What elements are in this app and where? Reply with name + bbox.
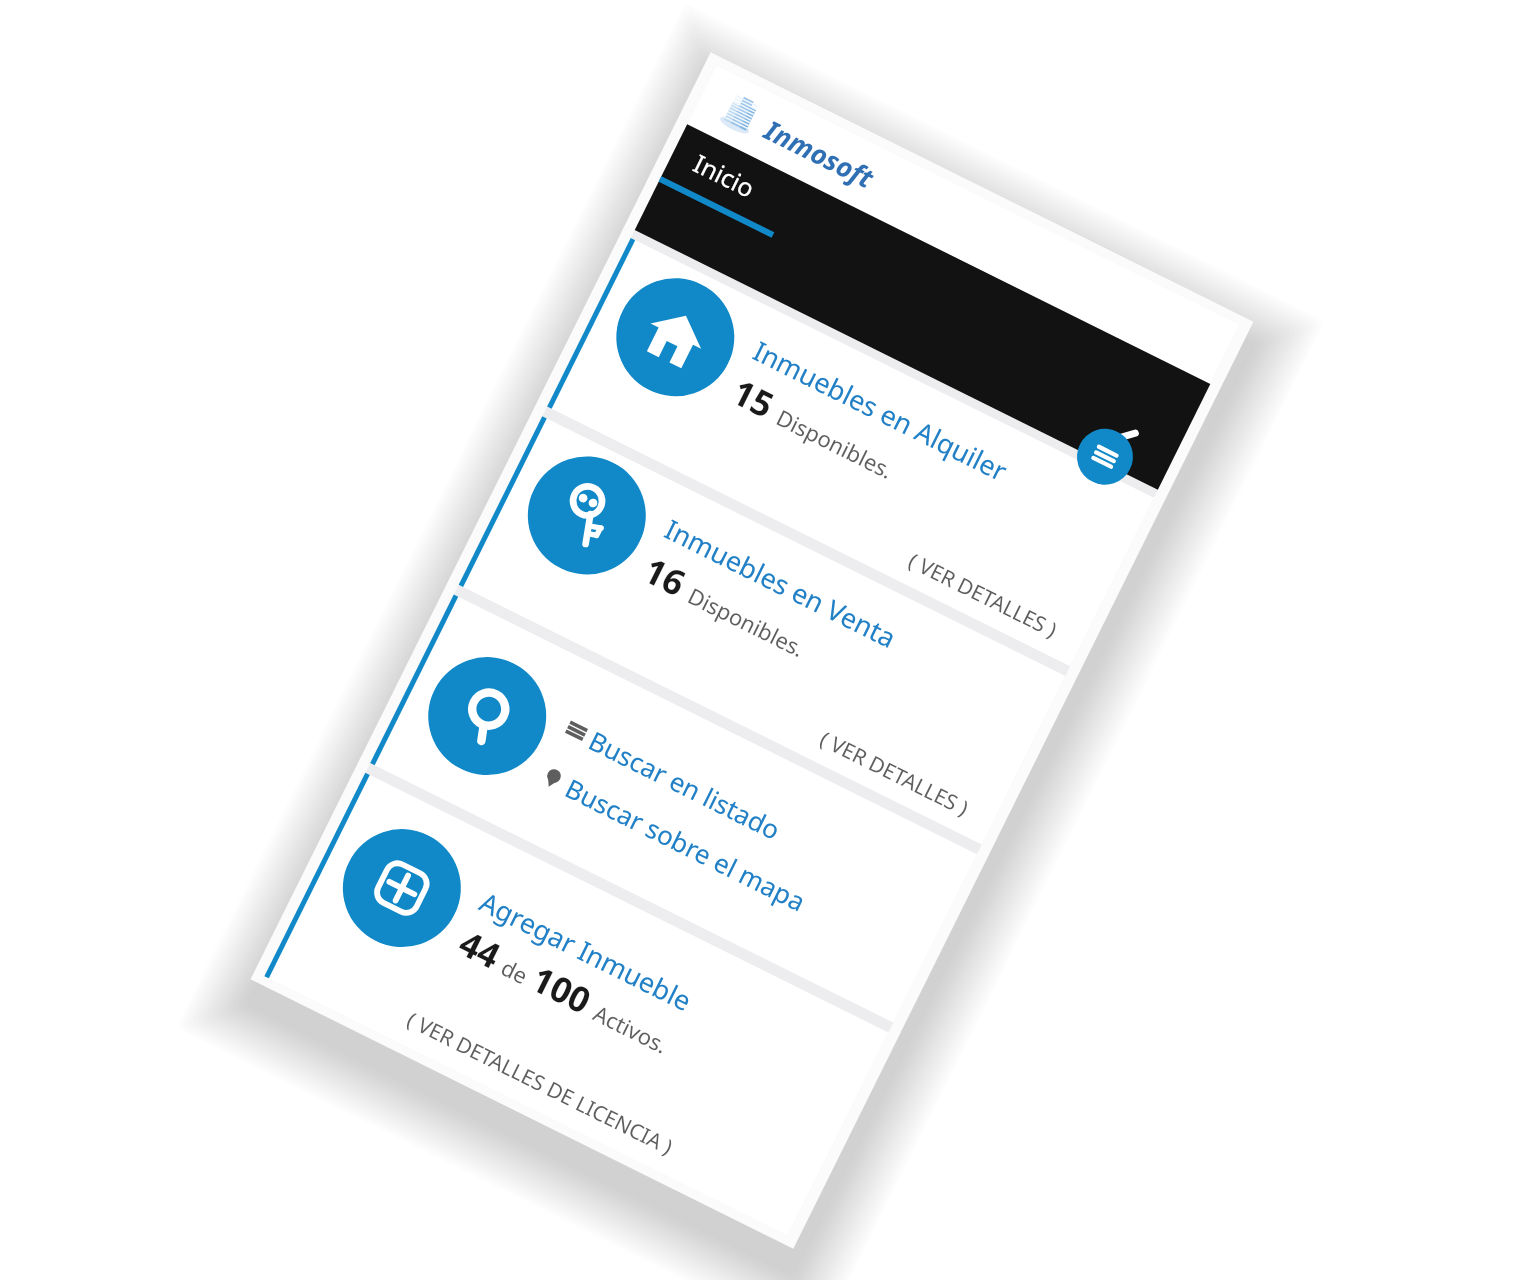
staticText: Inmosoft (759, 111, 880, 196)
staticText: Disponibles. (772, 402, 899, 485)
staticText: 15 (725, 368, 783, 429)
button[interactable]: Inmuebles en Alquiler (547, 238, 1154, 666)
button[interactable]: Inmuebles en Venta (459, 416, 1065, 844)
staticText: ( VER DETALLES ) (815, 724, 974, 823)
staticText: Activos. (589, 997, 674, 1060)
staticText: 100 (524, 955, 600, 1025)
button[interactable]: Agregar Inmueble (264, 773, 888, 1236)
staticText: Agregar Inmueble (474, 883, 698, 1019)
staticText: de (496, 952, 533, 990)
staticText: Disponibles. (683, 580, 810, 663)
button[interactable]: Menu (1067, 419, 1142, 494)
button[interactable]: Buscar en listado (370, 595, 977, 1023)
staticText: Inmuebles en Alquiler (747, 332, 1014, 489)
staticText: Inmuebles en Venta (659, 510, 903, 656)
staticText: 16 (636, 546, 694, 607)
button[interactable]: Buscar en listado (560, 711, 787, 847)
button[interactable]: Buscar sobre el mapa (537, 758, 812, 919)
staticText: 44 (451, 919, 509, 980)
button[interactable]: Inicio (661, 124, 800, 232)
staticText: Inicio (688, 146, 761, 205)
staticText: Buscar en listado (583, 722, 787, 847)
staticText: Buscar sobre el mapa (560, 770, 812, 919)
staticText: ( VER DETALLES DE LICENCIA ) (402, 1005, 678, 1161)
staticText: ( VER DETALLES ) (904, 546, 1062, 645)
button[interactable]: Back (1098, 411, 1154, 467)
